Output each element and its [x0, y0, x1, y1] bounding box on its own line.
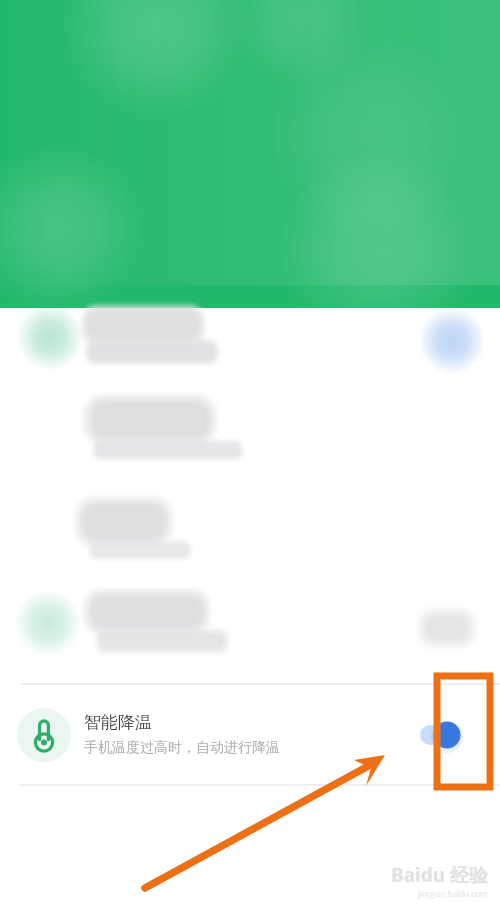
staticText: 手机温度过高时，自动进行降温 — [84, 739, 280, 757]
button[interactable]: 智能降温 开关 — [416, 713, 478, 757]
staticText: 智能降温 — [84, 712, 152, 733]
staticText: Baidu 经验 — [391, 862, 488, 888]
button[interactable]: 智能降温 — [0, 685, 500, 784]
staticText: jingyan.baidu.com — [418, 888, 488, 899]
